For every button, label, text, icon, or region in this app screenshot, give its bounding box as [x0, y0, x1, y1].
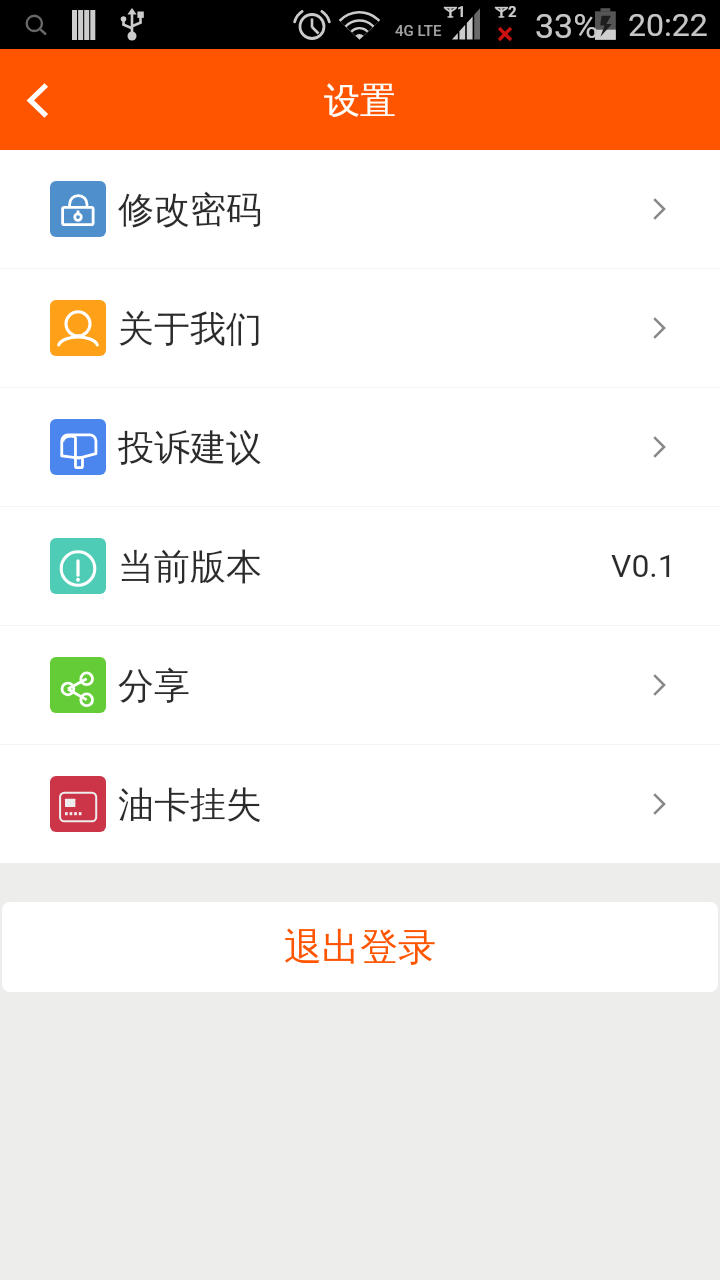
staticText: 33%: [535, 6, 599, 46]
button[interactable]: 退出登录: [2, 902, 718, 992]
button[interactable]: 当前版本: [0, 507, 720, 625]
staticText: 20:22: [628, 6, 708, 44]
staticText: 4G LTE: [395, 22, 442, 40]
staticText: 油卡挂失: [118, 782, 262, 827]
staticText: 当前版本: [118, 544, 262, 589]
button[interactable]: 分享: [0, 626, 720, 744]
staticText: 设置: [324, 78, 396, 123]
staticText: 分享: [118, 663, 190, 708]
staticText: 2: [508, 3, 517, 21]
button[interactable]: 油卡挂失: [0, 745, 720, 863]
staticText: 退出登录: [284, 923, 436, 971]
staticText: V0.1: [611, 547, 676, 585]
staticText: 投诉建议: [118, 425, 262, 470]
button[interactable]: 投诉建议: [0, 388, 720, 506]
button[interactable]: 关于我们: [0, 269, 720, 387]
staticText: 关于我们: [118, 306, 262, 351]
button[interactable]: Back: [0, 49, 76, 150]
staticText: 修改密码: [118, 187, 262, 232]
button[interactable]: 修改密码: [0, 150, 720, 268]
staticText: 1: [457, 3, 466, 21]
